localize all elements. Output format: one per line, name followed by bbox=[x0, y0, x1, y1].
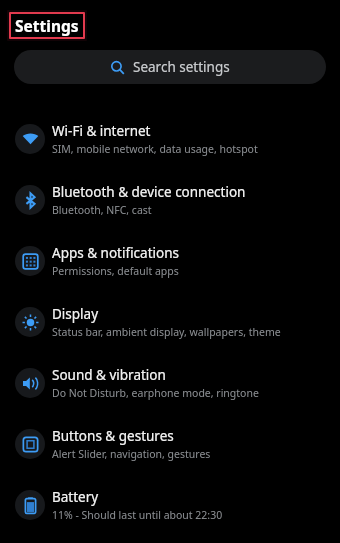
staticText: Wi-Fi & internet bbox=[52, 122, 151, 140]
staticText: Permissions, default apps bbox=[52, 264, 179, 278]
button[interactable]: Buttons & gestures bbox=[0, 413, 340, 474]
button[interactable]: Battery bbox=[0, 474, 340, 535]
button[interactable]: Display bbox=[0, 291, 340, 352]
staticText: Bluetooth & device connection bbox=[52, 183, 246, 201]
staticText: Settings bbox=[15, 15, 79, 36]
button[interactable]: Search settings bbox=[14, 50, 326, 84]
staticText: 11% - Should last until about 22:30 bbox=[52, 508, 223, 522]
staticText: Display bbox=[52, 305, 99, 323]
staticText: Battery bbox=[52, 488, 99, 506]
button[interactable]: Bluetooth & device connection bbox=[0, 169, 340, 230]
staticText: Apps & notifications bbox=[52, 244, 179, 262]
staticText: Buttons & gestures bbox=[52, 427, 174, 445]
staticText: SIM, mobile network, data usage, hotspot bbox=[52, 142, 258, 156]
button[interactable]: Sound & vibration bbox=[0, 352, 340, 413]
staticText: Status bar, ambient display, wallpapers,… bbox=[52, 325, 281, 339]
button[interactable]: Wi-Fi & internet bbox=[0, 108, 340, 169]
button[interactable]: Apps & notifications bbox=[0, 230, 340, 291]
staticText: Alert Slider, navigation, gestures bbox=[52, 447, 211, 461]
staticText: Do Not Disturb, earphone mode, ringtone bbox=[52, 386, 259, 400]
staticText: Bluetooth, NFC, cast bbox=[52, 203, 152, 217]
staticText: Search settings bbox=[133, 58, 230, 76]
staticText: Sound & vibration bbox=[52, 366, 166, 384]
